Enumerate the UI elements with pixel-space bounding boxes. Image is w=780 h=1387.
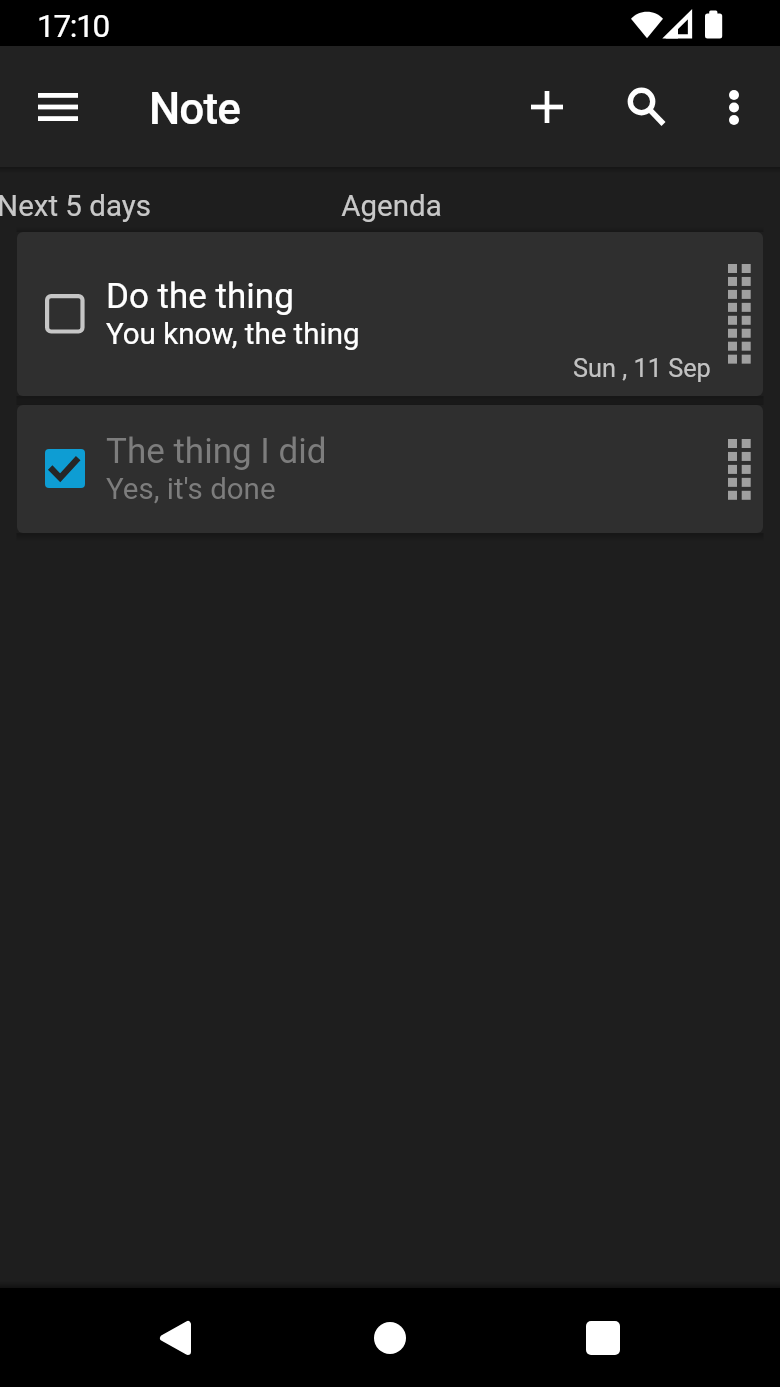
button[interactable]: More options [686, 59, 780, 155]
staticText: Sun , 11 Sep [573, 354, 711, 384]
button[interactable]: Recent apps [554, 1288, 651, 1387]
staticText: Yes, it's done [106, 472, 276, 507]
staticText: Agenda [341, 189, 442, 224]
button[interactable]: Agenda [241, 167, 541, 232]
button[interactable]: Search [594, 59, 690, 155]
button[interactable]: Add note [499, 59, 595, 155]
staticText: You know, the thing [106, 317, 360, 352]
button[interactable]: Toggle done [17, 232, 763, 396]
staticText: The thing I did [106, 431, 327, 472]
button[interactable]: Toggle done [39, 443, 91, 495]
other: Reorder [728, 264, 751, 364]
staticText: Do the thing [106, 276, 294, 317]
button[interactable]: Toggle done [17, 405, 763, 533]
button[interactable]: Open navigation drawer [10, 59, 106, 155]
button[interactable]: Toggle done [39, 288, 91, 340]
staticText: Note [149, 83, 240, 135]
button[interactable]: Next 5 days [0, 167, 224, 232]
other: Reorder [728, 439, 751, 500]
button[interactable]: Back [127, 1288, 224, 1387]
staticText: Next 5 days [0, 189, 151, 224]
staticText: 17:10 [37, 8, 109, 45]
button[interactable]: Home [341, 1288, 438, 1387]
